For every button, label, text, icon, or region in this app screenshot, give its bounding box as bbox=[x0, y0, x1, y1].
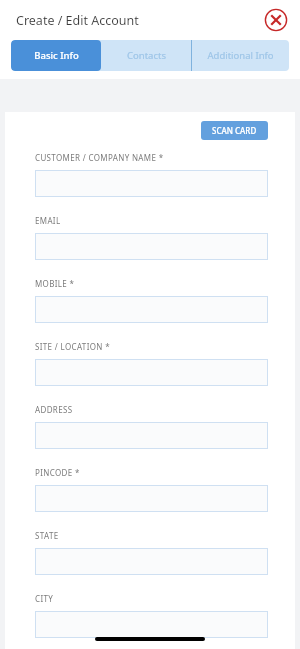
staticText: CUSTOMER / COMPANY NAME * bbox=[35, 152, 164, 163]
button[interactable] bbox=[35, 485, 268, 512]
button[interactable] bbox=[35, 422, 268, 449]
staticText: SCAN CARD bbox=[212, 125, 257, 136]
staticText: Basic Info bbox=[34, 49, 79, 62]
button[interactable]: Additional Info bbox=[192, 40, 289, 71]
staticText: Additional Info bbox=[207, 49, 274, 62]
staticText: EMAIL bbox=[35, 215, 61, 226]
button[interactable] bbox=[35, 548, 268, 575]
staticText: CITY bbox=[35, 593, 54, 604]
button[interactable]: Contacts bbox=[101, 40, 191, 71]
button[interactable] bbox=[35, 296, 268, 323]
button[interactable]: SCAN CARD bbox=[201, 121, 268, 140]
button[interactable] bbox=[35, 233, 268, 260]
button[interactable] bbox=[35, 170, 268, 197]
button[interactable]: Basic Info bbox=[11, 40, 101, 71]
staticText: SITE / LOCATION * bbox=[35, 341, 110, 352]
button[interactable]: Close bbox=[264, 8, 288, 32]
staticText: STATE bbox=[35, 530, 59, 541]
staticText: Contacts bbox=[127, 49, 166, 62]
button[interactable] bbox=[35, 611, 268, 638]
button[interactable] bbox=[35, 359, 268, 386]
staticText: PINCODE * bbox=[35, 467, 80, 478]
staticText: ADDRESS bbox=[35, 404, 73, 415]
staticText: Create / Edit Account bbox=[16, 12, 139, 29]
staticText: MOBILE * bbox=[35, 278, 75, 289]
